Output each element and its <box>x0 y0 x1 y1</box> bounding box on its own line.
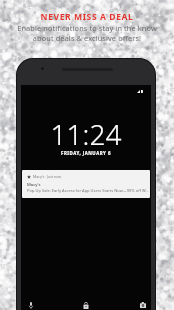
staticText: 11:24 <box>21 115 151 153</box>
other: Signal and battery <box>137 90 144 93</box>
staticText: FRIDAY, JANUARY 6 <box>21 150 151 156</box>
staticText: Pop-Up Sale: Early Access for App Users … <box>27 188 149 193</box>
button[interactable]: Locked <box>79 298 93 310</box>
staticText: Enable notifications to stay in the know… <box>0 23 174 43</box>
staticText: Macy's <box>27 182 41 188</box>
staticText: Macy's · Just now <box>33 174 62 179</box>
button[interactable]: Camera <box>136 298 150 310</box>
staticText: NEVER MISS A DEAL <box>0 11 174 23</box>
button[interactable]: Voice assistant <box>24 298 38 310</box>
button[interactable]: Macy's · Just now <box>22 170 150 198</box>
